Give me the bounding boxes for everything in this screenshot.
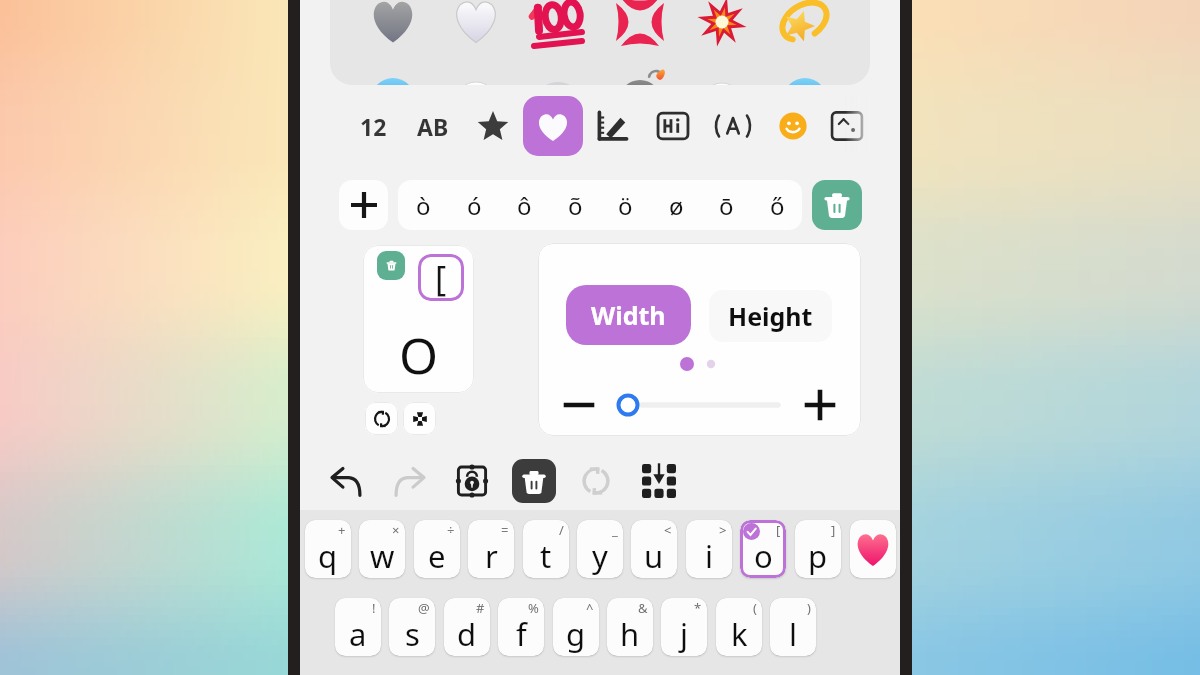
staticText: y	[592, 535, 608, 577]
staticText: /	[559, 521, 564, 539]
staticText: *	[694, 599, 702, 617]
button[interactable]: [	[740, 520, 786, 578]
staticText: l	[789, 613, 797, 655]
button[interactable]: =	[468, 520, 514, 578]
staticText: ø	[669, 189, 684, 222]
button[interactable]: ô	[499, 180, 549, 230]
button[interactable]: _	[577, 520, 623, 578]
staticText: )	[807, 599, 811, 617]
staticText: g	[566, 613, 586, 655]
button[interactable]: ò	[398, 180, 448, 230]
staticText: %	[528, 599, 539, 617]
button[interactable]: )	[770, 598, 816, 656]
staticText: f	[516, 613, 527, 655]
staticText: O	[399, 321, 439, 385]
button[interactable]: Delete glyph	[377, 251, 405, 280]
staticText: =	[501, 521, 509, 539]
staticText: õ	[568, 189, 583, 222]
button[interactable]: &	[607, 598, 653, 656]
staticText: ÷	[447, 521, 455, 539]
button[interactable]: Delete	[512, 459, 556, 503]
staticText: s	[405, 613, 420, 655]
button[interactable]	[817, 96, 877, 156]
staticText: #	[476, 599, 485, 617]
staticText: _	[612, 521, 618, 539]
button[interactable]	[463, 96, 523, 156]
staticText: ]	[831, 521, 836, 539]
button[interactable]: (	[716, 598, 762, 656]
button[interactable]: @	[389, 598, 435, 656]
button[interactable]: Width	[566, 285, 691, 345]
button[interactable]: ]	[795, 520, 841, 578]
staticText: a	[349, 613, 367, 655]
button[interactable]: Increase	[797, 382, 843, 428]
staticText: Width	[591, 298, 666, 332]
button[interactable]: ×	[359, 520, 405, 578]
button[interactable]: /	[523, 520, 569, 578]
button[interactable]: +	[305, 520, 351, 578]
staticText: w	[370, 535, 395, 577]
button[interactable]: Emoji	[850, 520, 896, 578]
button[interactable]: AB	[403, 96, 463, 156]
staticText: Height	[728, 299, 813, 333]
button[interactable]: Move	[403, 402, 436, 435]
staticText: +	[338, 521, 346, 539]
button[interactable]: 12	[343, 96, 403, 156]
button[interactable]: ő	[752, 180, 802, 230]
button[interactable]: <	[631, 520, 677, 578]
staticText: i	[705, 535, 713, 577]
staticText: ö	[618, 189, 633, 222]
button[interactable]	[763, 96, 823, 156]
staticText: >	[719, 521, 727, 539]
staticText: u	[644, 535, 664, 577]
staticText: q	[318, 535, 338, 577]
staticText: [	[435, 255, 447, 301]
button[interactable]: ^	[553, 598, 599, 656]
staticText: &	[638, 599, 648, 617]
button[interactable]: ø	[651, 180, 701, 230]
staticText: p	[808, 535, 828, 577]
button[interactable]	[703, 96, 763, 156]
button[interactable]: Refresh	[567, 452, 625, 510]
button[interactable]: Lock	[443, 452, 501, 510]
button[interactable]: Add	[339, 180, 388, 230]
button[interactable]: Delete	[812, 180, 862, 230]
staticText: e	[428, 535, 446, 577]
staticText: d	[457, 613, 477, 655]
button[interactable]: Redo	[380, 452, 438, 510]
staticText: ô	[517, 189, 532, 222]
button[interactable]	[583, 96, 643, 156]
staticText: 12	[360, 111, 387, 142]
button[interactable]: õ	[550, 180, 600, 230]
staticText: h	[620, 613, 640, 655]
staticText: [	[776, 521, 781, 539]
staticText: AB	[417, 111, 449, 142]
staticText: ő	[770, 189, 785, 222]
staticText: ò	[416, 189, 431, 222]
button[interactable]: Undo	[318, 452, 376, 510]
staticText: t	[540, 535, 552, 577]
button[interactable]: Decrease	[556, 382, 602, 428]
button[interactable]: #	[444, 598, 490, 656]
button[interactable]: %	[498, 598, 544, 656]
button[interactable]: [	[418, 254, 464, 301]
button[interactable]: ö	[600, 180, 650, 230]
button[interactable]: !	[335, 598, 381, 656]
staticText: r	[485, 535, 498, 577]
staticText: ō	[719, 189, 734, 222]
staticText: @	[418, 599, 430, 617]
button[interactable]: >	[686, 520, 732, 578]
staticText: <	[664, 521, 672, 539]
button[interactable]: ō	[701, 180, 751, 230]
button[interactable]: Sort	[630, 452, 688, 510]
button[interactable]: *	[661, 598, 707, 656]
button[interactable]: ó	[449, 180, 499, 230]
staticText: ^	[586, 599, 594, 617]
button[interactable]: Height	[709, 290, 832, 342]
button[interactable]: Rotate	[365, 402, 398, 435]
staticText: !	[372, 599, 376, 617]
button[interactable]: Favorites	[523, 96, 583, 156]
button[interactable]	[643, 96, 703, 156]
staticText: ó	[467, 189, 482, 222]
button[interactable]: ÷	[414, 520, 460, 578]
